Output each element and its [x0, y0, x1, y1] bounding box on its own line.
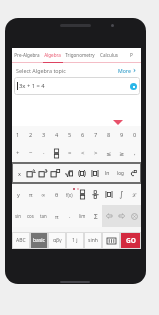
- button[interactable]: ·: [37, 144, 50, 162]
- staticText: ≤: [106, 150, 112, 157]
- button[interactable]: More: [118, 67, 137, 74]
- button[interactable]: [75, 164, 88, 182]
- staticText: More: [118, 67, 131, 74]
- staticText: 0: [133, 131, 137, 139]
- staticText: 6: [81, 131, 85, 139]
- button[interactable]: [49, 164, 62, 182]
- button[interactable]: [88, 164, 101, 182]
- button[interactable]: 3: [37, 126, 50, 144]
- button[interactable]: π: [24, 184, 37, 205]
- button[interactable]: Move right: [115, 205, 128, 227]
- button[interactable]: ≤: [102, 144, 115, 162]
- button[interactable]: [25, 164, 37, 182]
- staticText: y: [17, 191, 20, 198]
- button[interactable]: Σ: [89, 205, 102, 227]
- staticText: 3: [42, 131, 46, 139]
- button[interactable]: Algebra: [41, 48, 63, 62]
- button[interactable]: ABC: [13, 233, 29, 248]
- staticText: Σ: [94, 212, 98, 221]
- button[interactable]: [62, 164, 75, 182]
- staticText: ln: [105, 170, 110, 177]
- staticText: αβγ: [53, 237, 62, 244]
- button[interactable]: αβγ: [49, 233, 65, 248]
- button[interactable]: 1 j: [67, 233, 83, 248]
- button[interactable]: π: [50, 205, 63, 227]
- button[interactable]: <: [76, 144, 89, 162]
- button[interactable]: Hide keyboard: [103, 233, 119, 248]
- staticText: Trigonometry: [65, 52, 95, 58]
- button[interactable]: y: [12, 184, 24, 205]
- button[interactable]: Trigonometry: [63, 48, 96, 62]
- staticText: π: [29, 191, 33, 198]
- button[interactable]: 2: [24, 126, 37, 144]
- staticText: Algebra: [44, 52, 61, 58]
- button[interactable]: 8: [102, 126, 115, 144]
- button[interactable]: cos: [24, 205, 37, 227]
- staticText: 5: [68, 131, 72, 139]
- button[interactable]: GO: [121, 233, 140, 248]
- button[interactable]: sinh: [85, 233, 101, 248]
- button[interactable]: 7: [89, 126, 102, 144]
- button[interactable]: ℒ: [128, 184, 141, 205]
- button[interactable]: ∞: [37, 184, 50, 205]
- staticText: >: [94, 149, 98, 157]
- button[interactable]: Delete: [128, 205, 141, 227]
- staticText: <: [81, 149, 85, 157]
- button[interactable]: [89, 184, 102, 205]
- button[interactable]: +: [12, 144, 24, 162]
- other: Exponential: [130, 170, 137, 177]
- staticText: θ: [55, 191, 59, 198]
- staticText: f(x): [66, 192, 73, 198]
- staticText: +: [16, 149, 20, 157]
- staticText: 4: [55, 131, 59, 139]
- button[interactable]: Move left: [102, 205, 115, 227]
- staticText: ·: [43, 149, 45, 157]
- button[interactable]: =: [63, 144, 76, 162]
- button[interactable]: ,: [128, 144, 141, 162]
- staticText: 1: [16, 131, 20, 139]
- button[interactable]: sin: [12, 205, 24, 227]
- button[interactable]: 6: [76, 126, 89, 144]
- staticText: −: [29, 149, 33, 157]
- button[interactable]: f(x): [63, 184, 76, 205]
- button[interactable]: ≥: [115, 144, 128, 162]
- button[interactable]: [37, 164, 49, 182]
- staticText: basic: [33, 237, 45, 244]
- button[interactable]: Clear input: [130, 83, 137, 90]
- button[interactable]: 1: [12, 126, 24, 144]
- button[interactable]: 9: [115, 126, 128, 144]
- staticText: lim: [79, 213, 86, 219]
- button[interactable]: θ: [50, 184, 63, 205]
- staticText: 7: [94, 131, 98, 139]
- button[interactable]: tan: [37, 205, 50, 227]
- staticText: ·: [69, 213, 71, 220]
- staticText: x: [18, 170, 21, 177]
- staticText: GO: [126, 236, 136, 245]
- staticText: sinh: [88, 237, 98, 244]
- button[interactable]: 4: [50, 126, 63, 144]
- staticText: ∞: [41, 192, 46, 198]
- button[interactable]: [76, 184, 89, 205]
- other: Move right: [118, 213, 126, 219]
- button[interactable]: log: [114, 164, 127, 182]
- button[interactable]: basic: [31, 233, 47, 248]
- button[interactable]: lim: [76, 205, 89, 227]
- button[interactable]: [50, 144, 63, 162]
- button[interactable]: 5: [63, 126, 76, 144]
- button[interactable]: 0: [128, 126, 141, 144]
- button[interactable]: 3x + 1 = 4: [14, 77, 140, 95]
- button[interactable]: Calculus: [96, 48, 122, 62]
- button[interactable]: [102, 184, 115, 205]
- button[interactable]: ln: [101, 164, 114, 182]
- staticText: 3x + 1 = 4: [19, 82, 45, 90]
- button[interactable]: ∫: [115, 184, 128, 205]
- button[interactable]: >: [89, 144, 102, 162]
- button[interactable]: x: [13, 164, 25, 182]
- button[interactable]: −: [24, 144, 37, 162]
- button[interactable]: Pre-Algebra: [12, 48, 41, 62]
- button[interactable]: Exponential: [127, 164, 140, 182]
- button[interactable]: P: [122, 48, 141, 62]
- staticText: sin: [15, 213, 21, 219]
- staticText: ∫: [119, 190, 124, 199]
